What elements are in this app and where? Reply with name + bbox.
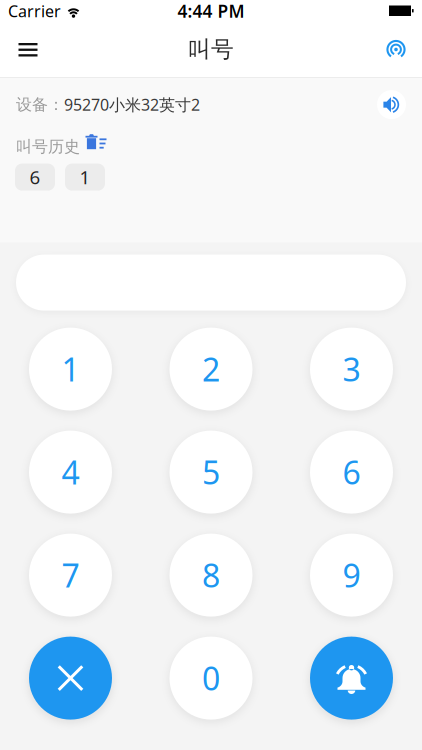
- staticText: 3: [342, 348, 360, 390]
- button[interactable]: 6: [310, 431, 393, 514]
- staticText: 4: [61, 451, 79, 493]
- staticText: 1: [61, 348, 79, 390]
- button[interactable]: 4: [29, 431, 112, 514]
- staticText: 6: [29, 165, 40, 189]
- staticText: 叫号历史: [16, 137, 80, 156]
- button[interactable]: Clear history: [85, 134, 107, 160]
- staticText: 2: [202, 348, 220, 390]
- staticText: 6: [342, 451, 360, 493]
- staticText: 0: [202, 657, 220, 699]
- button[interactable]: 1: [29, 328, 112, 411]
- button[interactable]: 3: [310, 328, 393, 411]
- staticText: 5: [202, 451, 220, 493]
- button[interactable]: Call: [310, 637, 393, 720]
- button[interactable]: 5: [169, 431, 252, 514]
- button[interactable]: 2: [169, 328, 252, 411]
- button[interactable]: Broadcast: [374, 27, 418, 71]
- staticText: 7: [61, 554, 79, 596]
- staticText: 4:44 PM: [177, 0, 244, 22]
- staticText: 叫号: [188, 36, 234, 63]
- staticText: 95270小米32英寸2: [64, 94, 200, 115]
- staticText: Carrier: [8, 0, 61, 22]
- button[interactable]: Menu: [6, 27, 50, 71]
- button[interactable]: 6: [15, 164, 55, 191]
- staticText: 设备：: [16, 95, 64, 114]
- button[interactable]: 8: [169, 534, 252, 617]
- staticText: 9: [342, 554, 360, 596]
- button[interactable]: Sound: [377, 90, 406, 119]
- button[interactable]: 7: [29, 534, 112, 617]
- staticText: 8: [202, 554, 220, 596]
- button[interactable]: Clear: [29, 637, 112, 720]
- button[interactable]: 9: [310, 534, 393, 617]
- button[interactable]: 0: [169, 637, 252, 720]
- staticText: 1: [79, 165, 90, 189]
- button[interactable]: 1: [65, 164, 105, 191]
